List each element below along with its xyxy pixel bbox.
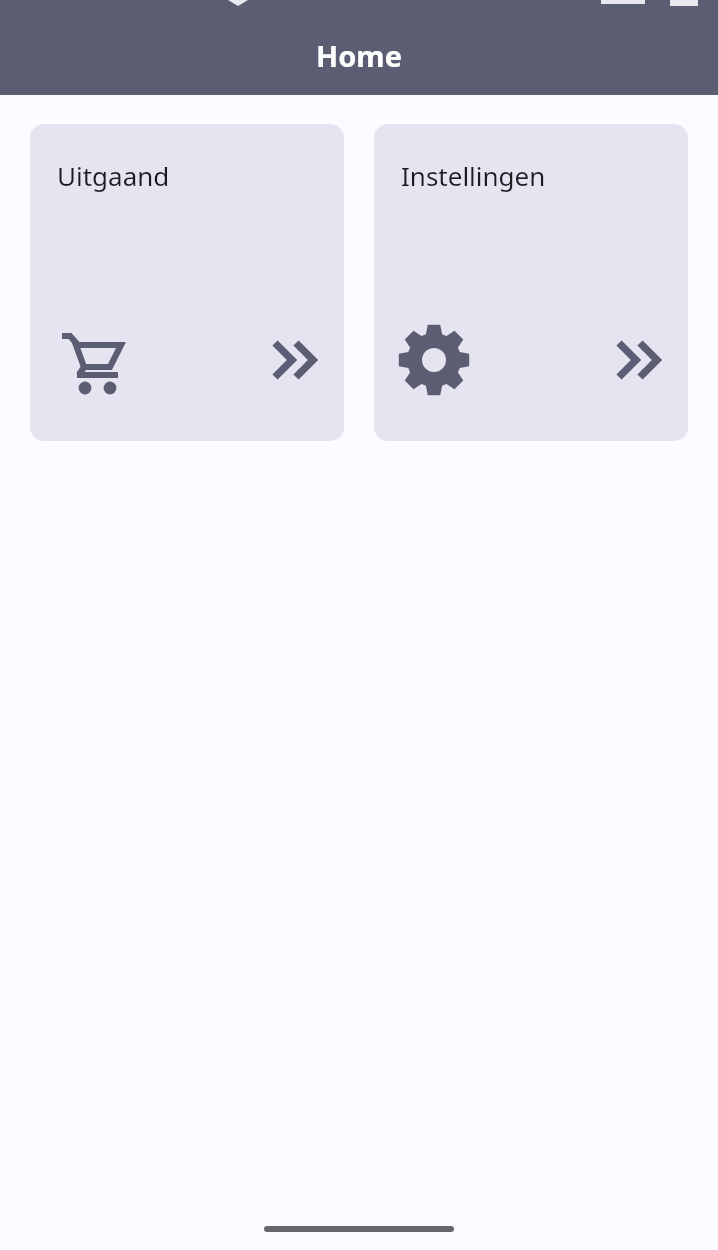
other: Open — [264, 329, 326, 391]
other: Instellingen — [396, 322, 472, 398]
button[interactable]: Uitgaand — [30, 124, 344, 441]
other: Uitgaand — [52, 322, 128, 398]
staticText: Instellingen — [401, 158, 546, 193]
staticText: Home — [0, 36, 718, 75]
button[interactable]: Instellingen — [374, 124, 688, 441]
staticText: Uitgaand — [57, 158, 170, 193]
other: Open — [608, 329, 670, 391]
